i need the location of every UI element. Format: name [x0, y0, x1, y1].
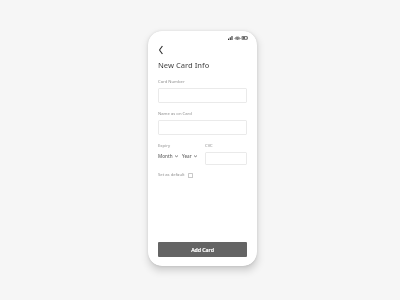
button[interactable]: Month: [158, 153, 178, 159]
staticText: Name as on Card: [158, 111, 192, 117]
button[interactable]: [158, 88, 247, 103]
staticText: Year: [182, 153, 192, 159]
staticText: Card Number: [158, 79, 185, 85]
staticText: Add Card: [191, 246, 214, 253]
button[interactable]: Back: [155, 44, 167, 56]
staticText: Month: [158, 153, 173, 159]
staticText: New Card Info: [158, 60, 210, 70]
button[interactable]: Add Card: [158, 242, 247, 257]
staticText: CVC: [205, 143, 213, 149]
button[interactable]: [205, 152, 247, 165]
staticText: Expiry: [158, 143, 171, 149]
staticText: Set as default: [158, 172, 185, 178]
button[interactable]: Set as default: [158, 172, 193, 178]
button[interactable]: [158, 120, 247, 135]
button[interactable]: Year: [182, 153, 197, 159]
